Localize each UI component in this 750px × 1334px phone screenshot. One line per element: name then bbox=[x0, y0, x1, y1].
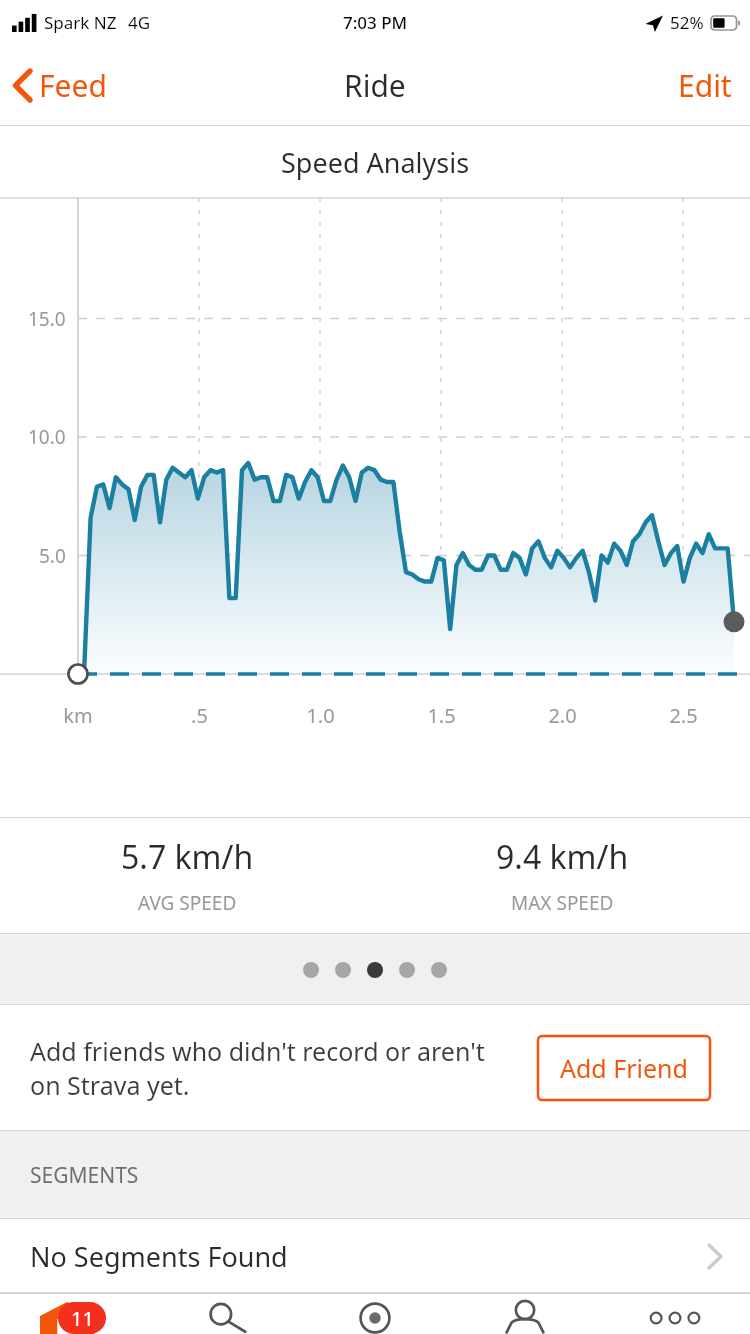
button[interactable]: 5.7 km/h bbox=[0, 818, 375, 934]
staticText: Add friends who didn't record or aren't … bbox=[30, 1034, 516, 1102]
staticText: Ride bbox=[344, 65, 406, 106]
staticText: 52% bbox=[670, 11, 704, 34]
staticText: 5.7 km/h bbox=[121, 835, 254, 879]
staticText: 9.4 km/h bbox=[496, 835, 629, 879]
staticText: 1.0 bbox=[306, 702, 335, 729]
button[interactable]: No Segments Found bbox=[0, 1219, 750, 1293]
staticText: MAX SPEED bbox=[511, 890, 614, 916]
staticText: 5.0 bbox=[39, 543, 66, 569]
staticText: Speed Analysis bbox=[281, 144, 470, 181]
staticText: 2.0 bbox=[548, 702, 577, 729]
button[interactable]: Page 2 bbox=[335, 962, 351, 978]
staticText: 4G bbox=[128, 11, 151, 34]
staticText: Feed bbox=[39, 65, 107, 106]
button[interactable]: Page 5 bbox=[431, 962, 447, 978]
button[interactable]: Page 4 bbox=[399, 962, 415, 978]
staticText: SEGMENTS bbox=[30, 1161, 139, 1190]
button[interactable]: Profile bbox=[450, 1293, 600, 1334]
staticText: .5 bbox=[191, 702, 208, 729]
button[interactable]: Page 3 bbox=[367, 962, 383, 978]
staticText: 1.5 bbox=[427, 702, 456, 729]
button[interactable]: 9.4 km/h bbox=[375, 818, 750, 934]
staticText: 10.0 bbox=[28, 424, 66, 450]
button[interactable]: Record bbox=[300, 1293, 450, 1334]
button[interactable]: More bbox=[600, 1293, 750, 1334]
staticText: 7:03 PM bbox=[343, 11, 408, 34]
staticText: Add Friend bbox=[560, 1051, 688, 1085]
button[interactable]: Add Friend bbox=[538, 1036, 710, 1100]
staticText: 2.5 bbox=[669, 702, 698, 729]
staticText: 11 bbox=[71, 1305, 94, 1332]
button[interactable]: Page 1 bbox=[303, 962, 319, 978]
staticText: 15.0 bbox=[28, 306, 66, 332]
staticText: Edit bbox=[678, 65, 732, 106]
button[interactable]: Explore bbox=[150, 1293, 300, 1334]
staticText: AVG SPEED bbox=[138, 890, 237, 916]
button[interactable]: 11 bbox=[0, 1293, 150, 1334]
button[interactable]: Feed bbox=[0, 57, 123, 114]
staticText: km bbox=[63, 702, 93, 729]
staticText: No Segments Found bbox=[30, 1238, 288, 1275]
staticText: Spark NZ bbox=[44, 11, 117, 34]
button[interactable]: Edit bbox=[660, 55, 750, 116]
